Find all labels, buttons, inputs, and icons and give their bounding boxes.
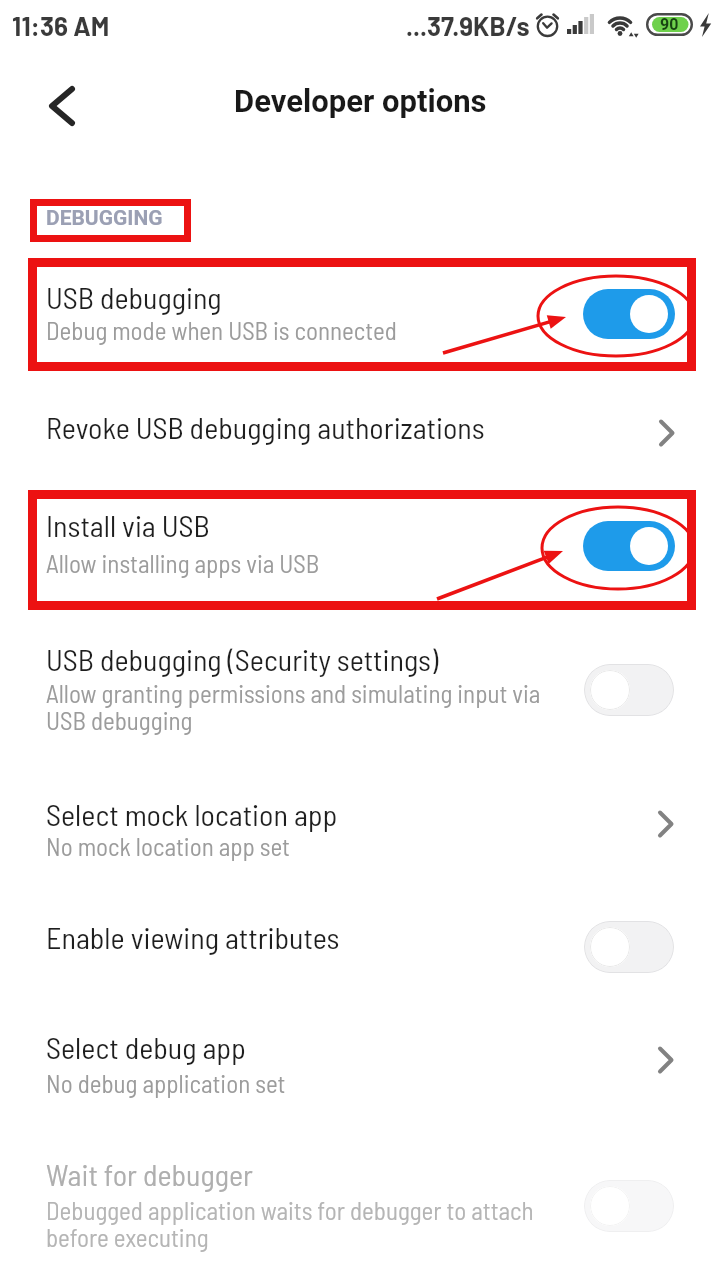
staticText: USB debugging: [46, 705, 193, 735]
staticText: Select debug app: [46, 1029, 246, 1065]
staticText: No debug application set: [46, 1068, 286, 1098]
button[interactable]: [46, 86, 78, 126]
button[interactable]: [0, 1015, 720, 1120]
staticText: before executing: [46, 1222, 209, 1252]
button[interactable]: [584, 664, 674, 716]
button[interactable]: [0, 258, 720, 370]
button[interactable]: [583, 521, 675, 571]
staticText: Revoke USB debugging authorizations: [46, 409, 485, 445]
button[interactable]: [0, 1140, 720, 1280]
staticText: 90: [660, 15, 679, 34]
staticText: ...37.9KB/s: [406, 10, 530, 41]
staticText: Developer options: [234, 83, 487, 119]
button[interactable]: [0, 905, 720, 995]
staticText: 11:36 AM: [12, 10, 110, 41]
staticText: No mock location app set: [46, 831, 290, 861]
button[interactable]: [584, 921, 674, 973]
staticText: Select mock location app: [46, 796, 338, 832]
staticText: Enable viewing attributes: [46, 919, 340, 955]
staticText: DEBUGGING: [46, 206, 163, 231]
staticText: Install via USB: [46, 507, 210, 543]
staticText: Debug mode when USB is connected: [46, 315, 397, 345]
button[interactable]: [583, 289, 675, 339]
staticText: USB debugging: [46, 279, 222, 315]
staticText: Allow granting permissions and simulatin…: [46, 678, 541, 708]
button[interactable]: [0, 780, 720, 885]
button[interactable]: [0, 630, 720, 750]
button[interactable]: [584, 1180, 674, 1232]
staticText: Allow installing apps via USB: [46, 548, 320, 578]
staticText: Debugged application waits for debugger …: [46, 1195, 534, 1225]
button[interactable]: [0, 395, 720, 470]
button[interactable]: [0, 490, 720, 610]
staticText: USB debugging (Security settings): [46, 641, 439, 677]
staticText: Wait for debugger: [46, 1156, 253, 1192]
